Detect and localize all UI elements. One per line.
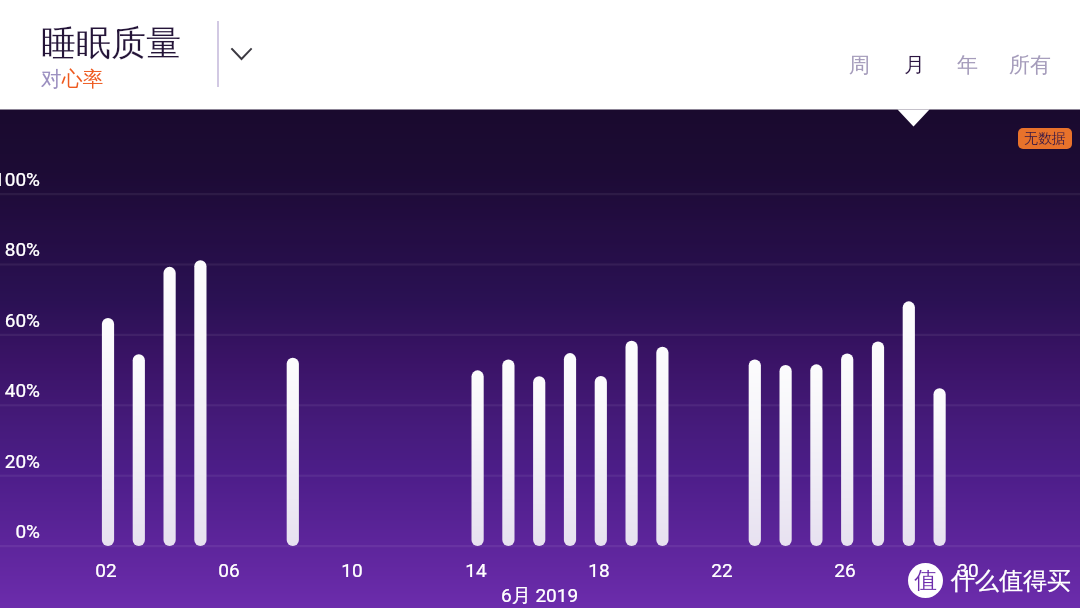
staticText: 所有 [1009,52,1051,78]
staticText: 02 [95,559,117,579]
staticText: 30 [957,559,979,579]
staticText: 20% [4,450,40,470]
staticText: 0% [15,520,40,540]
button[interactable]: 月 [889,48,939,82]
staticText: 06 [218,559,240,579]
button[interactable]: 年 [942,48,992,82]
staticText: 14 [465,559,487,579]
button[interactable]: Expand metric chooser [218,31,264,77]
staticText: 对心率 [41,66,104,92]
staticText: 6月 2019 [501,584,579,604]
staticText: 22 [711,559,733,579]
staticText: 睡眠质量 [41,21,181,65]
staticText: 60% [4,309,40,329]
button[interactable]: 周 [834,48,884,82]
staticText: 值 [914,566,937,595]
staticText: 18 [588,559,610,579]
staticText: 什么值得买 [951,566,1071,596]
staticText: 月 [904,52,925,78]
button[interactable]: 睡眠质量 [38,19,184,94]
staticText: 80% [4,238,40,258]
button[interactable]: 无数据 [1018,128,1072,149]
staticText: 26 [834,559,856,579]
staticText: 周 [849,52,870,78]
staticText: 40% [4,379,40,399]
staticText: 年 [957,52,978,78]
staticText: 无数据 [1024,130,1066,148]
staticText: 100% [0,168,40,188]
staticText: 10 [341,559,363,579]
button[interactable]: 所有 [1005,48,1055,82]
